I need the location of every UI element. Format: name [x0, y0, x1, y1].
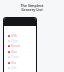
button[interactable]: More options: [33, 27, 36, 30]
staticText: Pears: [11, 55, 20, 59]
staticText: Eggs: [11, 39, 19, 43]
staticText: Tea: [11, 61, 17, 65]
staticText: Salt: [11, 66, 17, 70]
staticText: Rice: [11, 50, 18, 54]
staticText: The Simplest Grocery List: [0, 3, 64, 12]
staticText: Milk: [11, 34, 18, 38]
button[interactable]: Search: [30, 27, 33, 30]
button[interactable]: Menu: [5, 27, 8, 30]
button[interactable]: Tea: [4, 60, 36, 65]
staticText: Bread: [11, 44, 20, 48]
button[interactable]: Bread: [4, 43, 36, 48]
button[interactable]: Rice: [4, 49, 36, 54]
button[interactable]: Pears: [4, 54, 36, 59]
button[interactable]: Eggs: [4, 38, 36, 43]
button[interactable]: Salt: [4, 65, 36, 70]
button[interactable]: Milk: [4, 33, 36, 38]
